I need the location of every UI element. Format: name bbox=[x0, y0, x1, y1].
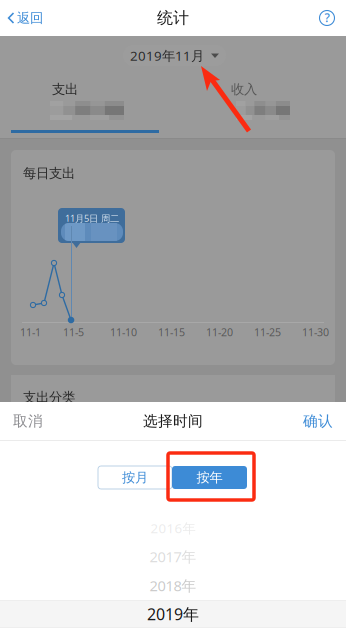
staticText: 统计 bbox=[157, 8, 189, 28]
staticText: 11-10 bbox=[110, 325, 137, 339]
staticText: 11-20 bbox=[206, 325, 233, 339]
staticText: 2019年11月 bbox=[130, 47, 204, 64]
staticText: 11-25 bbox=[254, 325, 281, 339]
button[interactable]: 返回 bbox=[0, 0, 43, 36]
staticText: 确认 bbox=[303, 412, 333, 430]
staticText: 2019年 bbox=[147, 603, 199, 625]
button[interactable]: 2019年11月 bbox=[123, 45, 226, 66]
staticText: 支出分类 bbox=[23, 389, 75, 405]
button[interactable]: 2019年 bbox=[0, 600, 346, 628]
staticText: 选择时间 bbox=[143, 412, 203, 430]
staticText: ? bbox=[324, 9, 329, 25]
button[interactable]: 按月 bbox=[98, 466, 172, 489]
button[interactable]: 帮助 bbox=[308, 0, 346, 36]
staticText: 按月 bbox=[122, 469, 148, 486]
staticText: 按年 bbox=[196, 469, 222, 486]
staticText: 11-5 bbox=[63, 325, 84, 339]
staticText: 取消 bbox=[13, 412, 43, 430]
staticText: 2017年 bbox=[149, 547, 196, 566]
button[interactable]: 收入 bbox=[0, 81, 173, 126]
staticText: 支出分类 bbox=[23, 389, 75, 405]
staticText: 收入 bbox=[231, 81, 257, 97]
staticText: 11-30 bbox=[302, 325, 329, 339]
staticText: 2016年 bbox=[150, 519, 195, 537]
button[interactable]: 按年 bbox=[172, 466, 247, 489]
button[interactable]: 取消 bbox=[0, 402, 56, 440]
staticText: 支出 bbox=[52, 81, 78, 97]
staticText: 11-15 bbox=[158, 325, 185, 339]
staticText: 返回 bbox=[17, 10, 43, 26]
button[interactable]: 支出 bbox=[0, 81, 173, 126]
staticText: 每日支出 bbox=[23, 165, 75, 181]
button[interactable]: 确认 bbox=[290, 402, 346, 440]
staticText: 2018年 bbox=[149, 576, 196, 595]
staticText: 11月5日 周二 bbox=[65, 212, 119, 224]
button[interactable]: 2018年 bbox=[0, 571, 346, 600]
button[interactable]: 2017年 bbox=[0, 542, 346, 571]
staticText: 11-1 bbox=[20, 325, 41, 339]
